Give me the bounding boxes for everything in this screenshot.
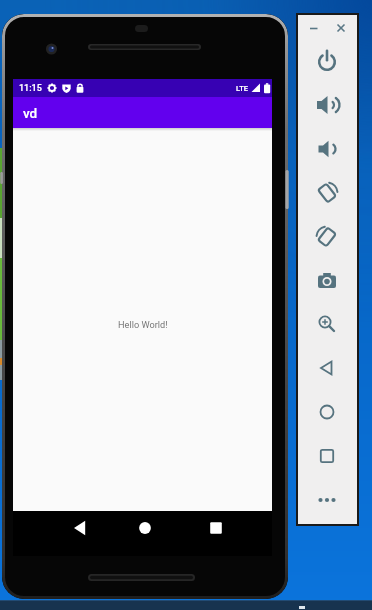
staticText: vd <box>23 105 38 121</box>
button[interactable] <box>0 600 372 610</box>
button[interactable] <box>310 220 344 254</box>
staticText: 11:15 <box>19 83 42 94</box>
button[interactable] <box>310 307 344 341</box>
button[interactable] <box>333 20 349 36</box>
button[interactable] <box>310 44 344 78</box>
button[interactable] <box>310 351 344 385</box>
staticText: Hello World! <box>118 319 168 330</box>
button[interactable] <box>310 132 344 166</box>
button[interactable]: vd <box>13 97 272 128</box>
button[interactable] <box>310 439 344 473</box>
button[interactable] <box>310 176 344 210</box>
button[interactable] <box>66 514 94 542</box>
button[interactable] <box>310 88 344 122</box>
button[interactable] <box>306 20 322 36</box>
button[interactable] <box>202 514 230 542</box>
button[interactable] <box>131 514 159 542</box>
button[interactable] <box>310 264 344 298</box>
button[interactable] <box>310 395 344 429</box>
button[interactable] <box>310 483 344 517</box>
staticText: LTE <box>236 84 249 93</box>
